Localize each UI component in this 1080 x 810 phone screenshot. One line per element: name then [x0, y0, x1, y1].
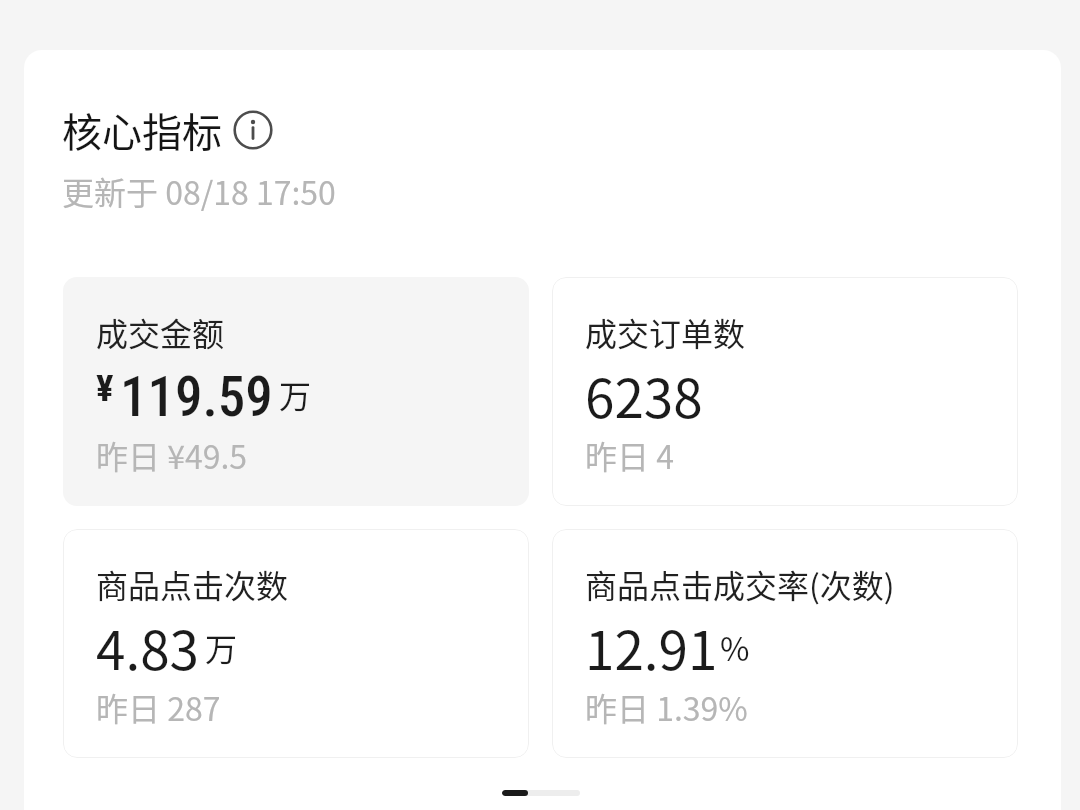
staticText: 成交订单数 [585, 309, 746, 355]
staticText: 万 [205, 624, 238, 670]
staticText: % [720, 624, 750, 670]
staticText: 核心指标 [62, 101, 222, 159]
staticText: 4.83 [96, 609, 199, 686]
button[interactable]: 商品点击次数 [63, 529, 529, 758]
staticText: 商品点击成交率(次数) [585, 561, 895, 607]
staticText: 昨日 4 [585, 432, 674, 478]
button[interactable]: 成交订单数 [552, 277, 1018, 506]
staticText: 商品点击次数 [96, 561, 289, 607]
staticText: 6238 [585, 357, 703, 434]
staticText: 12.91 [585, 609, 718, 686]
staticText: ¥ [96, 367, 114, 410]
staticText: 119.59 [120, 365, 273, 429]
button[interactable]: More information [232, 109, 274, 151]
button[interactable]: 成交金额 [63, 277, 529, 506]
staticText: 更新于 08/18 17:50 [62, 168, 336, 214]
staticText: 昨日 1.39% [585, 684, 748, 730]
staticText: 昨日 287 [96, 684, 221, 730]
staticText: 万 [279, 371, 312, 417]
staticText: 昨日 ¥49.5 [96, 432, 248, 478]
staticText: 成交金额 [96, 309, 225, 355]
button[interactable]: 商品点击成交率(次数) [552, 529, 1018, 758]
